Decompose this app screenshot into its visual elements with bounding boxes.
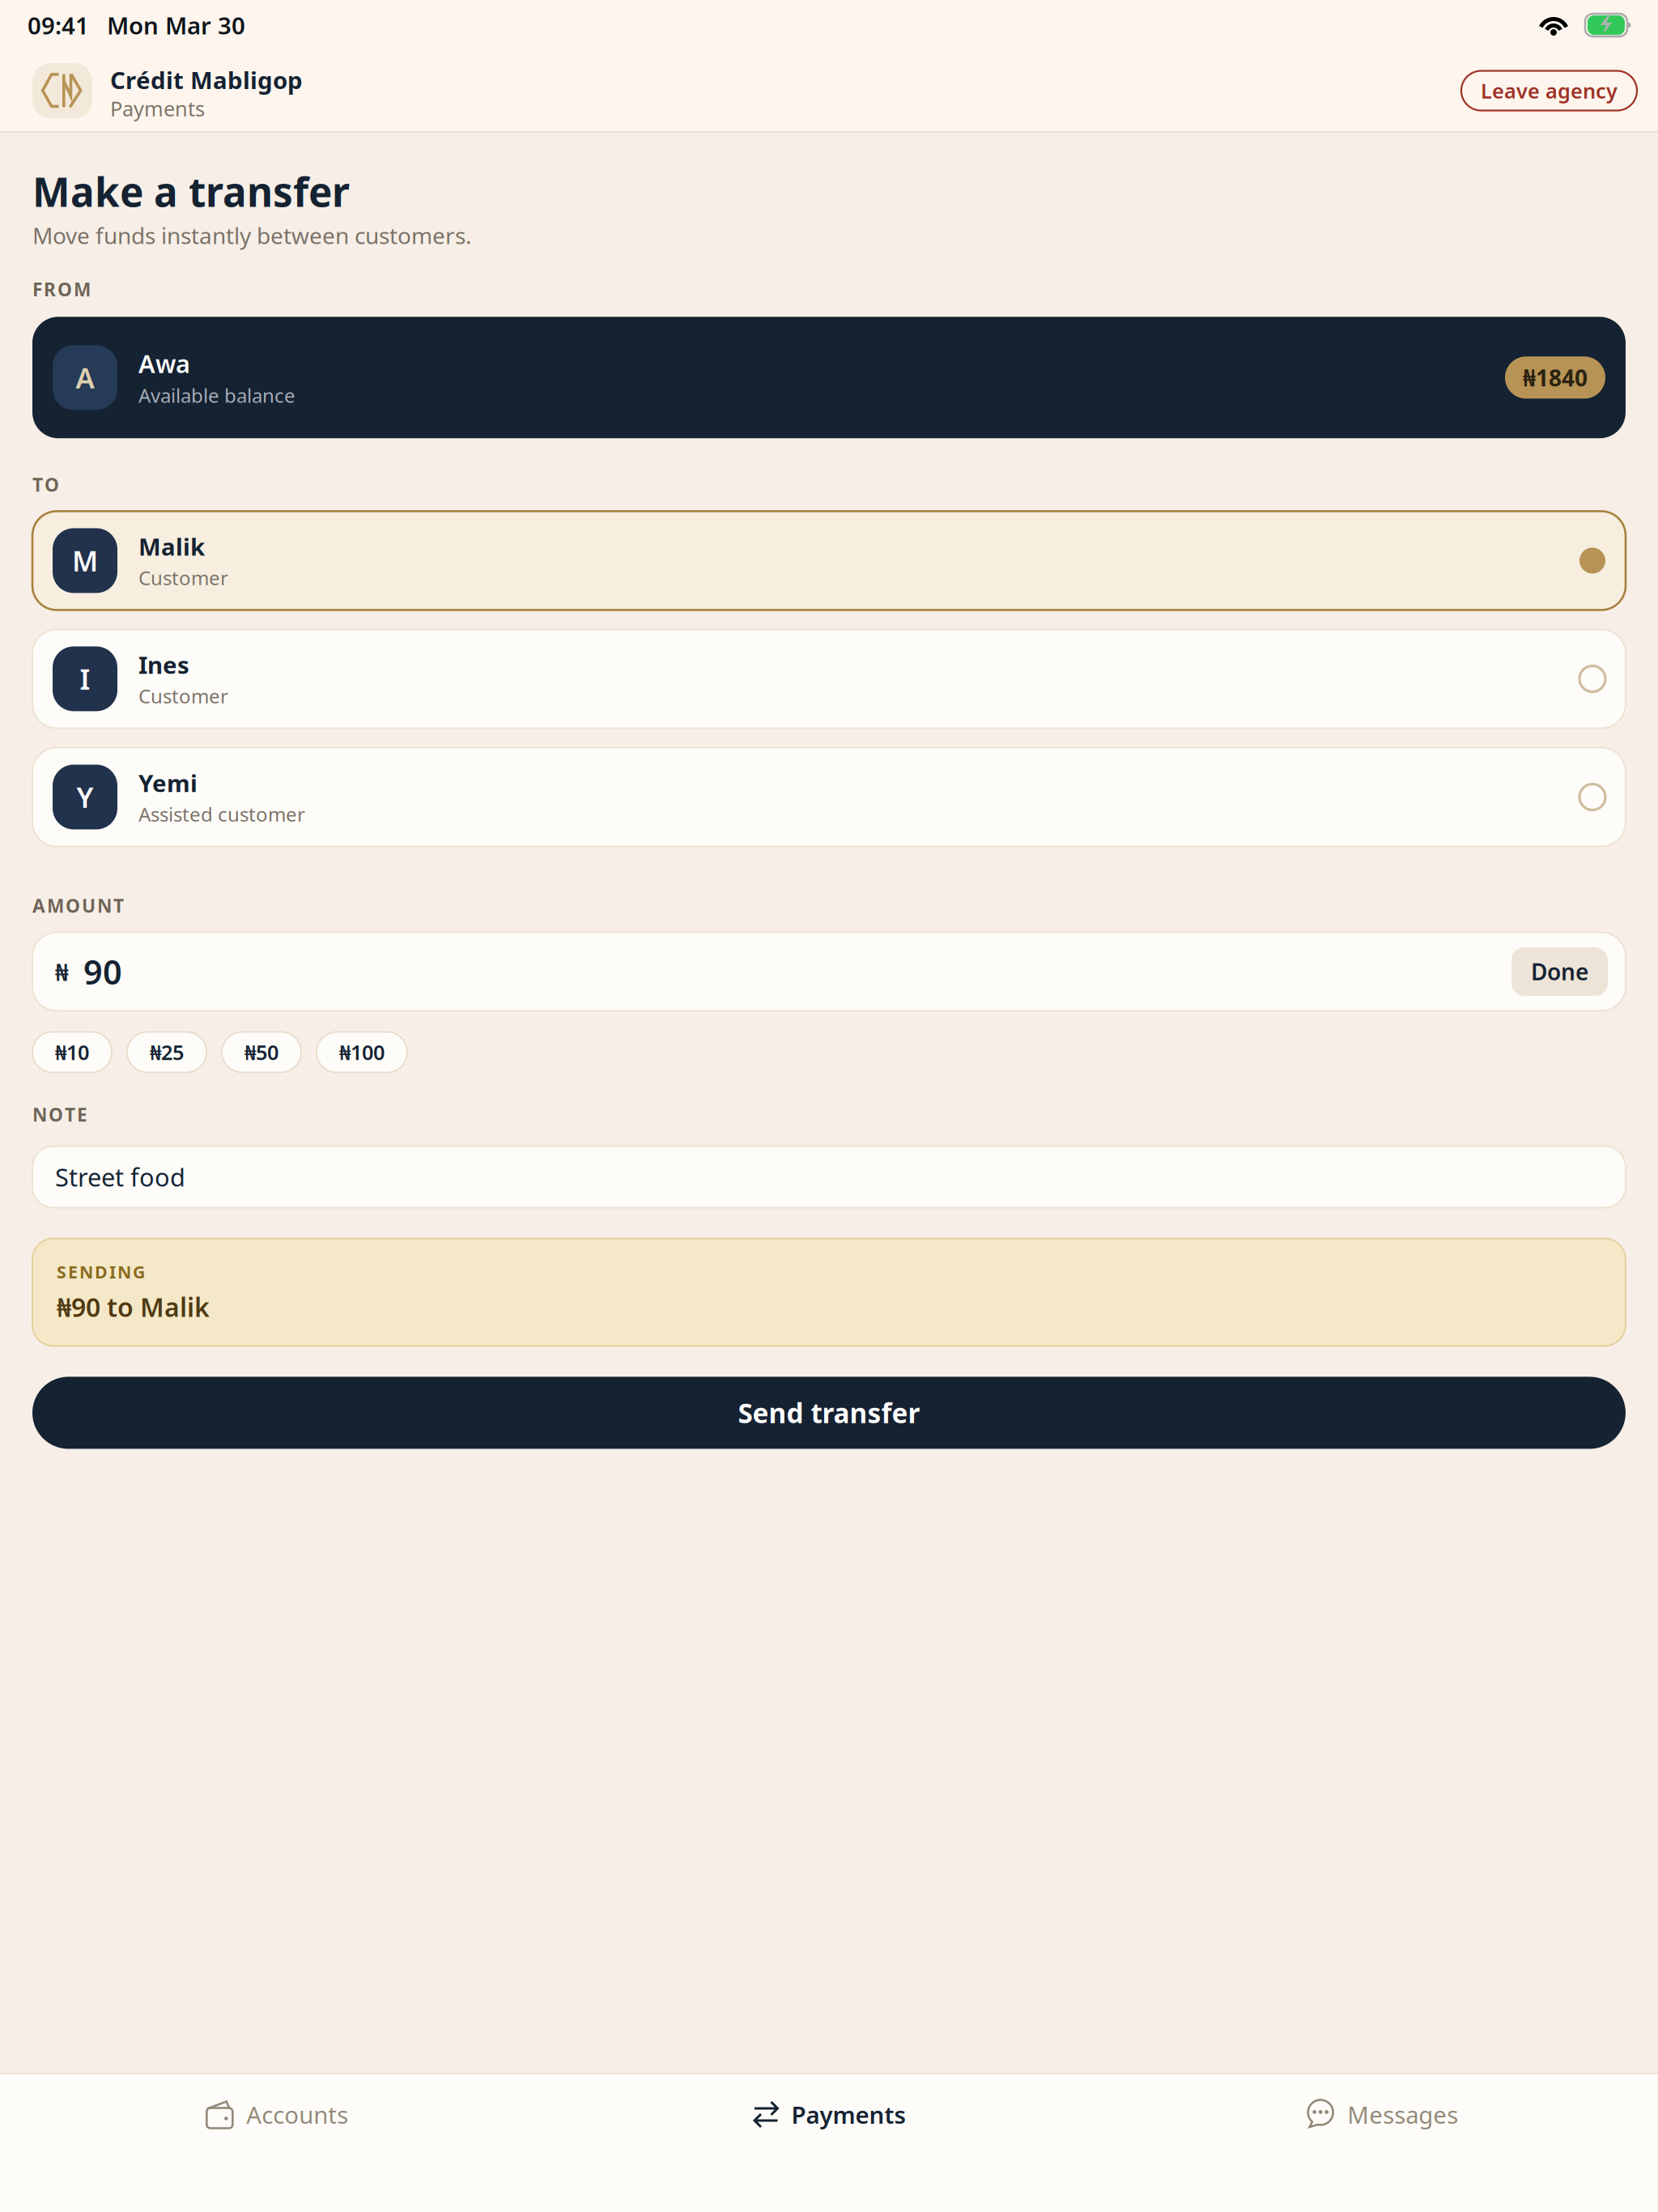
- button[interactable]: Accounts: [0, 2074, 553, 2155]
- staticText: Mon Mar 30: [107, 9, 245, 41]
- button[interactable]: Street food: [32, 1146, 1626, 1208]
- staticText: Leave agency: [1481, 77, 1618, 104]
- staticText: A M O U N T: [32, 893, 124, 918]
- button[interactable]: ₦10: [32, 1032, 112, 1072]
- staticText: Available balance: [138, 382, 295, 408]
- staticText: Payments: [110, 95, 205, 122]
- staticText: S E N D I N G: [57, 1260, 145, 1283]
- staticText: Customer: [138, 565, 228, 590]
- staticText: ₦90 to Malik: [57, 1290, 210, 1324]
- staticText: Payments: [791, 2099, 906, 2130]
- button[interactable]: Payments: [553, 2074, 1105, 2155]
- button[interactable]: I: [32, 629, 1626, 728]
- staticText: M: [72, 542, 98, 579]
- staticText: Messages: [1347, 2099, 1458, 2130]
- staticText: ₦50: [244, 1039, 278, 1066]
- staticText: ₦1840: [1523, 362, 1588, 393]
- staticText: ₦25: [150, 1039, 184, 1066]
- button[interactable]: M: [32, 511, 1626, 610]
- staticText: Malik: [138, 531, 205, 562]
- staticText: Y: [77, 778, 94, 816]
- staticText: Accounts: [246, 2099, 348, 2130]
- staticText: Done: [1531, 957, 1588, 987]
- button[interactable]: Y: [32, 748, 1626, 846]
- staticText: ₦10: [55, 1039, 89, 1066]
- staticText: Customer: [138, 683, 228, 709]
- staticText: Send transfer: [738, 1395, 920, 1431]
- button[interactable]: Messages: [1105, 2074, 1658, 2155]
- staticText: F R O M: [32, 277, 91, 301]
- staticText: ₦: [55, 956, 69, 987]
- button[interactable]: ₦25: [127, 1032, 206, 1072]
- staticText: Awa: [138, 347, 190, 380]
- staticText: N O T E: [32, 1102, 87, 1127]
- staticText: Ines: [138, 649, 189, 681]
- staticText: 90: [83, 949, 122, 994]
- staticText: Crédit Mabligop: [110, 64, 303, 96]
- button[interactable]: ₦100: [317, 1032, 407, 1072]
- button[interactable]: Leave agency: [1461, 71, 1637, 111]
- staticText: Move funds instantly between customers.: [32, 220, 472, 250]
- staticText: Make a transfer: [32, 165, 350, 218]
- staticText: Yemi: [138, 767, 198, 799]
- staticText: A: [76, 359, 94, 396]
- staticText: 09:41: [28, 9, 89, 41]
- button[interactable]: ₦50: [222, 1032, 301, 1072]
- button[interactable]: Send transfer: [32, 1377, 1626, 1449]
- staticText: I: [80, 660, 90, 697]
- staticText: ₦100: [339, 1039, 385, 1066]
- staticText: T O: [32, 472, 59, 497]
- staticText: Assisted customer: [138, 801, 305, 827]
- button[interactable]: Done: [1511, 947, 1608, 996]
- staticText: Street food: [55, 1160, 185, 1193]
